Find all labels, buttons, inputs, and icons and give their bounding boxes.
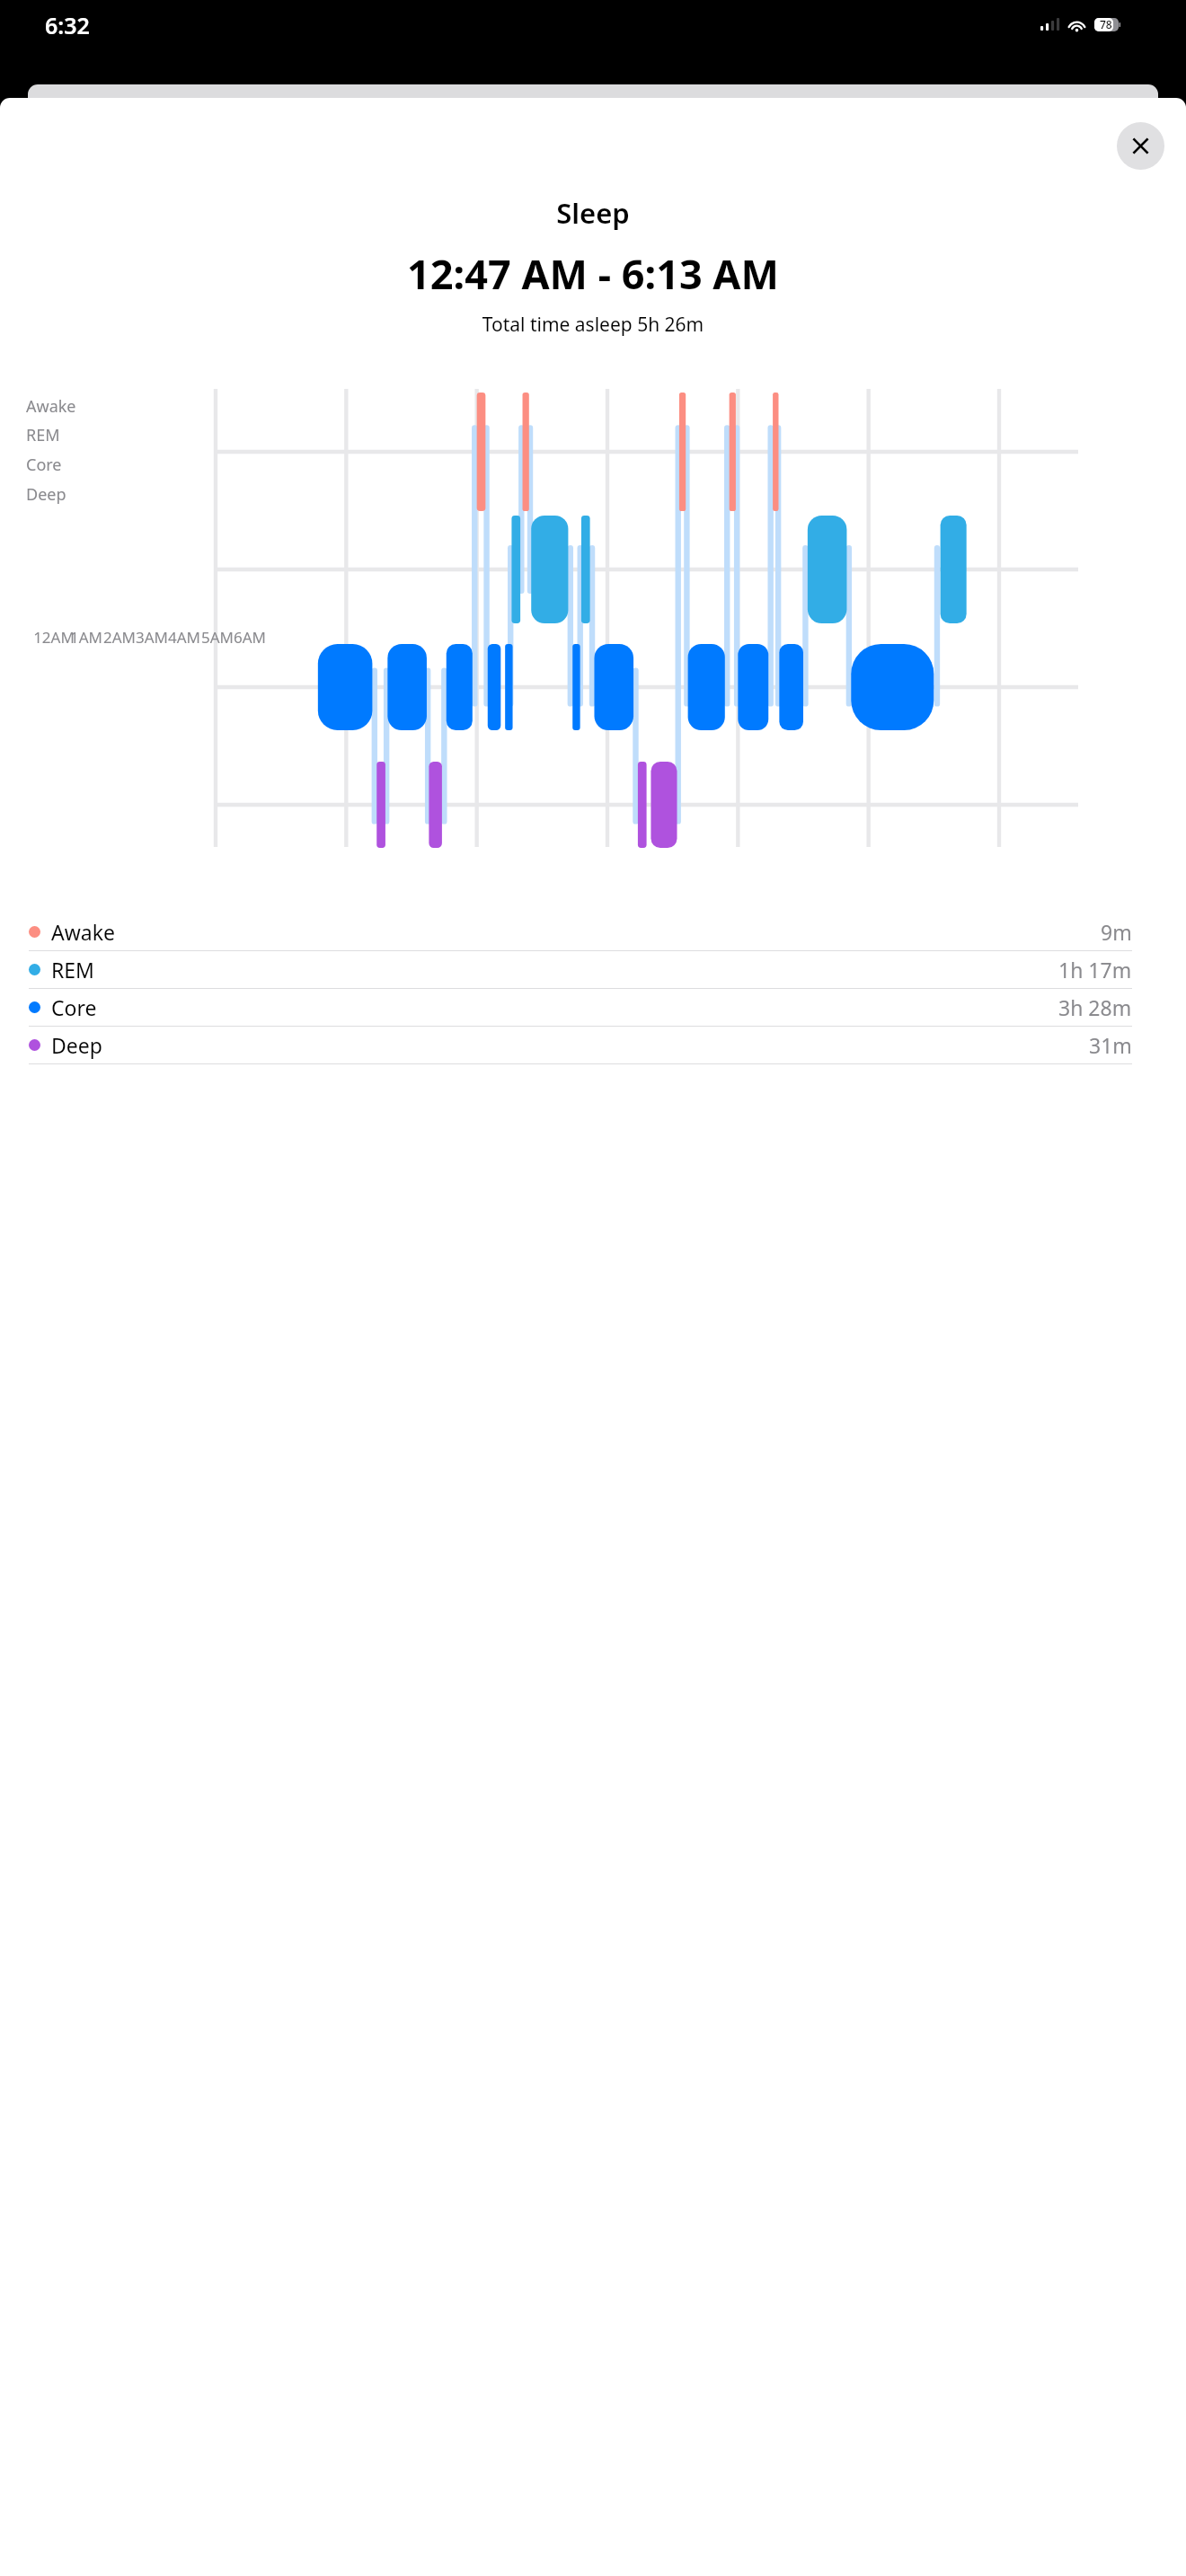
button[interactable]: Awake	[0, 913, 1186, 950]
staticText: Core	[26, 454, 62, 476]
staticText: Deep	[26, 483, 66, 506]
staticText: Deep	[51, 1031, 102, 1059]
staticText: 1h 17m	[1058, 956, 1132, 984]
staticText: Total time asleep 5h 26m	[0, 312, 1186, 338]
staticText: 6:32	[45, 10, 90, 40]
staticText: 4AM	[162, 627, 207, 648]
staticText: Sleep	[0, 194, 1186, 232]
button[interactable]: Close	[1117, 122, 1164, 170]
button[interactable]: REM	[0, 951, 1186, 988]
staticText: 5AM	[195, 627, 240, 648]
staticText: Awake	[26, 395, 76, 418]
staticText: 78	[1100, 17, 1112, 31]
staticText: 12AM	[31, 627, 76, 648]
button[interactable]: Core	[0, 989, 1186, 1026]
staticText: REM	[51, 956, 94, 984]
staticText: 3h 28m	[1058, 993, 1132, 1021]
staticText: 12:47 AM - 6:13 AM	[0, 246, 1186, 301]
staticText: 9m	[1101, 918, 1132, 946]
staticText: REM	[26, 424, 60, 446]
staticText: 2AM	[97, 627, 142, 648]
staticText: Core	[51, 993, 97, 1021]
staticText: Awake	[51, 918, 115, 946]
staticText: 3AM	[129, 627, 174, 648]
staticText: 6AM	[227, 627, 272, 648]
staticText: 31m	[1089, 1031, 1132, 1059]
button[interactable]: Deep	[0, 1027, 1186, 1063]
staticText: 1AM	[64, 627, 109, 648]
